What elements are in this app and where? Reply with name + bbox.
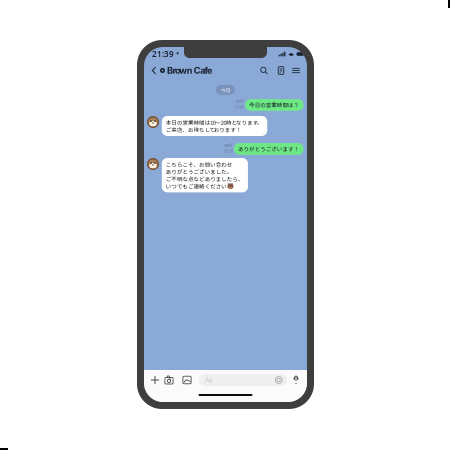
staticText: Brown Cafe: [167, 65, 212, 76]
staticText: ご来店、お待ちしております！: [166, 126, 242, 134]
staticText: こちらこそ、お問い合わせ: [166, 160, 233, 168]
staticText: 14:30: [223, 148, 232, 154]
staticText: 今日: [220, 86, 230, 94]
button[interactable]: Message: [199, 371, 287, 389]
button[interactable]: Photos: [180, 371, 194, 389]
staticText: 既読: [235, 98, 243, 104]
staticText: Aa: [205, 376, 213, 384]
button[interactable]: Camera: [162, 371, 176, 389]
staticText: 既読: [224, 142, 232, 148]
staticText: 21:39: [152, 49, 174, 59]
button[interactable]: Voice message: [289, 371, 303, 389]
staticText: 今日の営業時間は？: [249, 101, 299, 109]
button[interactable]: Menu: [289, 62, 303, 79]
staticText: 本日の営業時間は10〜20時となります。: [166, 118, 263, 126]
button[interactable]: Back: [148, 62, 160, 79]
button[interactable]: Search: [255, 62, 273, 79]
button[interactable]: Add: [148, 371, 162, 389]
staticText: 14:30: [234, 104, 243, 110]
staticText: ありがとうございます！: [238, 145, 299, 153]
staticText: ありがとうございました。: [166, 168, 233, 176]
staticText: ご不明な点などありましたら、: [166, 175, 244, 183]
staticText: いつでもご連絡ください🐻: [166, 182, 234, 190]
button[interactable]: Notes: [273, 62, 289, 79]
